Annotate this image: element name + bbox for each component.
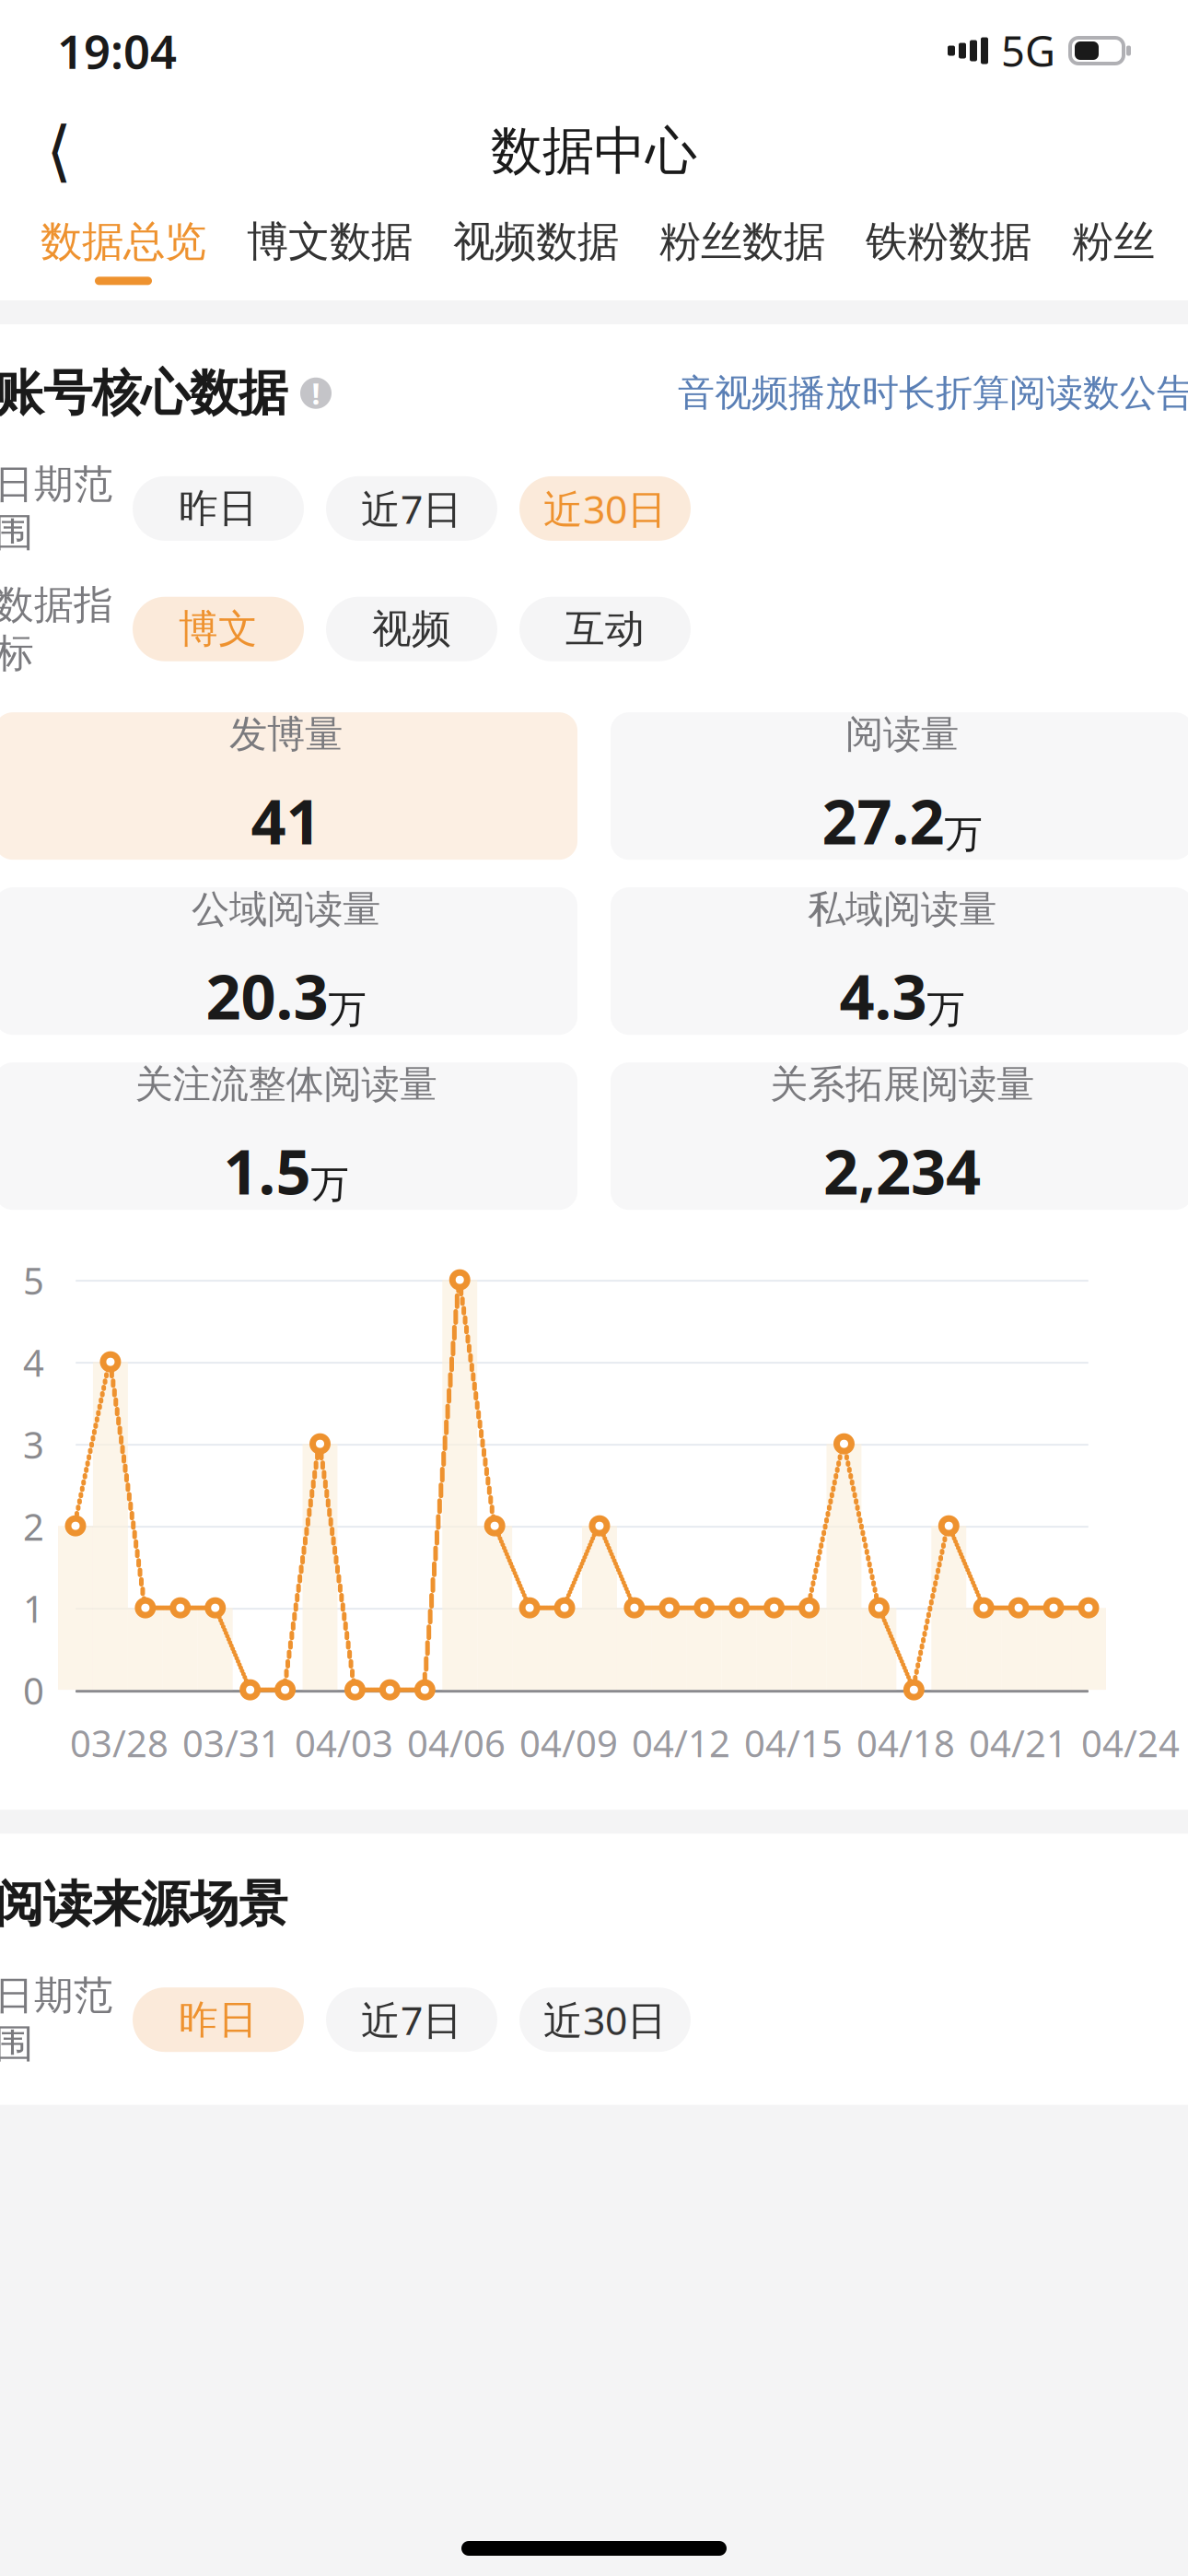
staticText: 5 (23, 1256, 44, 1305)
staticText: 1.5 (223, 1130, 311, 1211)
button[interactable]: 博文 (133, 597, 304, 661)
button[interactable]: 近7日 (326, 1987, 497, 2052)
button[interactable]: 粉丝 (1052, 201, 1175, 300)
staticText: 近7日 (361, 1994, 462, 2046)
staticText: 数据中心 (491, 119, 697, 183)
button[interactable]: 近7日 (326, 476, 497, 541)
staticText: 4.3 (839, 955, 927, 1036)
staticText: 关注流整体阅读量 (135, 1061, 437, 1108)
staticText: 5G (1001, 23, 1055, 78)
button[interactable]: 博文数据 (227, 201, 433, 300)
staticText: 19:04 (57, 20, 177, 82)
staticText: 2 (23, 1502, 44, 1551)
staticText: 数据总览 (41, 216, 206, 268)
button[interactable]: 近30日 (519, 1987, 691, 2052)
staticText: 万 (944, 811, 982, 858)
staticText: 阅读量 (845, 711, 959, 758)
button[interactable]: 近30日 (519, 476, 691, 541)
staticText: 04/06 (407, 1718, 506, 1767)
button[interactable]: 昨日 (133, 476, 304, 541)
staticText: 粉丝 (1072, 216, 1155, 268)
staticText: 发博量 (229, 711, 343, 758)
button[interactable]: 互动 (519, 597, 691, 661)
staticText: 04/03 (295, 1718, 393, 1767)
staticText: 04/21 (969, 1718, 1067, 1767)
staticText: 04/09 (519, 1718, 618, 1767)
staticText: 私域阅读量 (808, 886, 996, 933)
staticText: 阅读来源场景 (0, 1874, 287, 1935)
staticText: 日期范围 (0, 460, 113, 557)
staticText: 04/18 (856, 1718, 955, 1767)
staticText: 41 (251, 780, 321, 861)
staticText: 铁粉数据 (866, 216, 1031, 268)
staticText: 03/28 (70, 1718, 169, 1767)
staticText: 万 (311, 1161, 349, 1208)
staticText: 公域阅读量 (192, 886, 380, 933)
button[interactable]: 视频 (326, 597, 497, 661)
staticText: 博文 (179, 605, 258, 653)
staticText: 1 (23, 1584, 44, 1633)
button[interactable]: 发博量 (0, 712, 577, 860)
button[interactable]: 私域阅读量 (611, 887, 1188, 1035)
staticText: 3 (23, 1420, 44, 1469)
staticText: 万 (927, 986, 965, 1033)
staticText: 03/31 (182, 1718, 281, 1767)
staticText: 04/24 (1081, 1718, 1180, 1767)
staticText: 关系拓展阅读量 (770, 1061, 1034, 1108)
button[interactable]: 数据总览 (20, 201, 227, 300)
staticText: 博文数据 (247, 216, 413, 268)
staticText: 20.3 (206, 955, 328, 1036)
staticText: 万 (328, 986, 366, 1033)
staticText: 近7日 (361, 482, 462, 535)
button[interactable]: 粉丝数据 (639, 201, 845, 300)
button[interactable]: 铁粉数据 (845, 201, 1052, 300)
staticText: 账号核心数据 (0, 363, 287, 423)
button[interactable]: 公域阅读量 (0, 887, 577, 1035)
staticText: ⟨ (46, 113, 72, 189)
staticText: 音视频播放时长折算阅读数公告 (678, 371, 1188, 416)
button[interactable]: 音视频播放时长折算阅读数公告 (678, 371, 1188, 416)
staticText: 粉丝数据 (659, 216, 825, 268)
staticText: 4 (23, 1338, 44, 1387)
staticText: 04/15 (744, 1718, 843, 1767)
button[interactable]: 阅读量 (611, 712, 1188, 860)
staticText: 近30日 (543, 1994, 667, 2046)
button[interactable]: 关注流整体阅读量 (0, 1062, 577, 1210)
staticText: 昨日 (179, 1996, 258, 2044)
staticText: 0 (23, 1666, 44, 1715)
staticText: 互动 (565, 605, 645, 653)
button[interactable]: 返回 (15, 107, 103, 195)
staticText: 27.2 (822, 780, 944, 861)
button[interactable]: 说明 (287, 378, 332, 409)
staticText: 近30日 (543, 482, 667, 535)
staticText: 04/12 (632, 1718, 730, 1767)
staticText: 视频数据 (453, 216, 619, 268)
staticText: 视频 (372, 605, 451, 653)
staticText: 日期范围 (0, 1971, 113, 2068)
button[interactable]: 昨日 (133, 1987, 304, 2052)
staticText: 数据指标 (0, 581, 113, 677)
staticText: ! (312, 374, 320, 413)
staticText: 昨日 (179, 484, 258, 533)
button[interactable]: 关系拓展阅读量 (611, 1062, 1188, 1210)
button[interactable]: 视频数据 (433, 201, 639, 300)
staticText: 2,234 (823, 1130, 981, 1211)
